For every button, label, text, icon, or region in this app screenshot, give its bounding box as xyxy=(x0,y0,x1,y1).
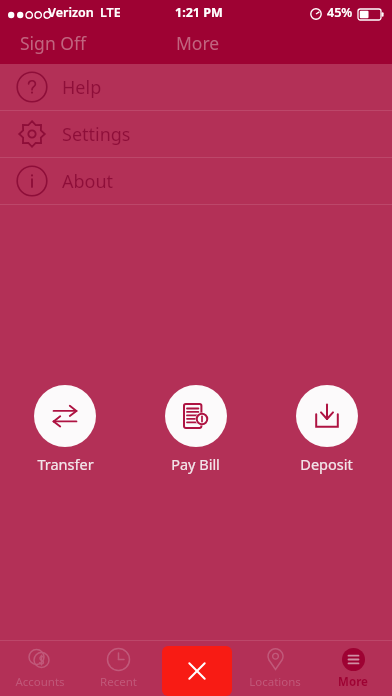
button[interactable]: Deposit xyxy=(261,385,392,474)
staticText: Sign Off xyxy=(20,31,86,55)
button[interactable]: More xyxy=(168,28,228,58)
button[interactable]: Close menu xyxy=(162,646,232,696)
staticText: Deposit xyxy=(300,454,353,474)
staticText: More xyxy=(176,31,220,55)
staticText: Locations xyxy=(249,674,301,690)
staticText: More xyxy=(338,674,368,690)
button[interactable]: More xyxy=(314,640,392,696)
button[interactable]: Help xyxy=(0,64,392,110)
button[interactable]: Transfer xyxy=(0,385,130,474)
button[interactable]: Locations xyxy=(236,640,314,696)
staticText: 45% xyxy=(327,4,353,21)
button[interactable]: Pay Bill xyxy=(130,385,261,474)
button[interactable]: Sign Off xyxy=(12,28,94,58)
button[interactable]: Recent xyxy=(79,640,158,696)
staticText: 1:21 PM xyxy=(175,4,223,21)
button[interactable]: Settings xyxy=(0,111,392,157)
staticText: Recent xyxy=(100,674,137,690)
staticText: Transfer xyxy=(37,454,94,474)
button[interactable]: About xyxy=(0,158,392,204)
staticText: About xyxy=(62,169,114,194)
staticText: Verizon xyxy=(48,4,94,21)
staticText: Accounts xyxy=(15,674,65,690)
button[interactable]: Accounts xyxy=(0,640,79,696)
staticText: Settings xyxy=(62,122,131,147)
staticText: LTE xyxy=(100,4,121,21)
staticText: Help xyxy=(62,75,102,100)
staticText: Pay Bill xyxy=(171,454,220,474)
